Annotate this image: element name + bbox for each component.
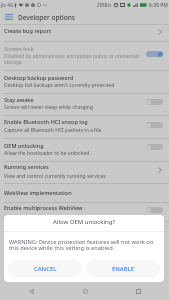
staticText: Allow OEM unlocking? (53, 218, 115, 226)
button[interactable] (0, 161, 169, 182)
staticText: Desktop backup password (4, 74, 74, 81)
staticText: Developer options (18, 13, 75, 22)
staticText: Capture all Bluetooth HCI packets in a f… (4, 127, 102, 134)
staticText: Stay awake (4, 96, 34, 103)
button[interactable] (0, 183, 169, 201)
button[interactable] (0, 25, 169, 41)
staticText: WebView implementation (4, 189, 72, 196)
button[interactable]: CANCEL (8, 260, 82, 277)
staticText: Enable Bluetooth HCI snoop log (4, 118, 88, 125)
button[interactable] (0, 116, 169, 139)
staticText: Desktop full backups aren't currently pr… (4, 82, 115, 89)
button[interactable]: Toggle (146, 144, 163, 150)
staticText: Screen will never sleep while charging (4, 104, 94, 111)
button[interactable] (0, 41, 169, 70)
staticText: 6:39 PM (149, 2, 168, 9)
staticText: Allow the bootloader to be unlocked (4, 150, 90, 157)
button[interactable]: ENABLE (86, 260, 160, 277)
button[interactable] (0, 71, 169, 93)
button[interactable] (0, 202, 169, 220)
staticText: ENABLE (112, 265, 134, 273)
staticText: WARNING: Device protection features will… (9, 238, 159, 252)
button[interactable]: Back (24, 284, 38, 298)
staticText: Disabled by administrator, encryption po… (4, 53, 139, 60)
staticText: CANCEL (34, 265, 57, 273)
staticText: Enable multiprocess WebView (4, 204, 83, 211)
staticText: Screen lock (4, 45, 34, 52)
button[interactable]: Toggle (146, 99, 163, 105)
button[interactable]: Toggle (146, 51, 163, 57)
staticText: Create bug report (4, 27, 51, 34)
staticText: View and control currently running servi… (4, 173, 106, 180)
staticText: 295B/s (97, 2, 112, 8)
button[interactable]: Toggle (146, 207, 163, 213)
staticText: Jio 4G (1, 2, 13, 8)
staticText: Running services (4, 163, 49, 170)
button[interactable]: Open navigation menu (3, 11, 15, 23)
button[interactable] (0, 93, 169, 115)
button[interactable] (0, 139, 169, 161)
button[interactable]: Home (78, 284, 92, 298)
button[interactable]: Toggle (146, 122, 163, 128)
button[interactable]: Recent apps (131, 284, 145, 298)
staticText: OEM unlocking (4, 142, 44, 149)
staticText: storage (4, 59, 22, 66)
